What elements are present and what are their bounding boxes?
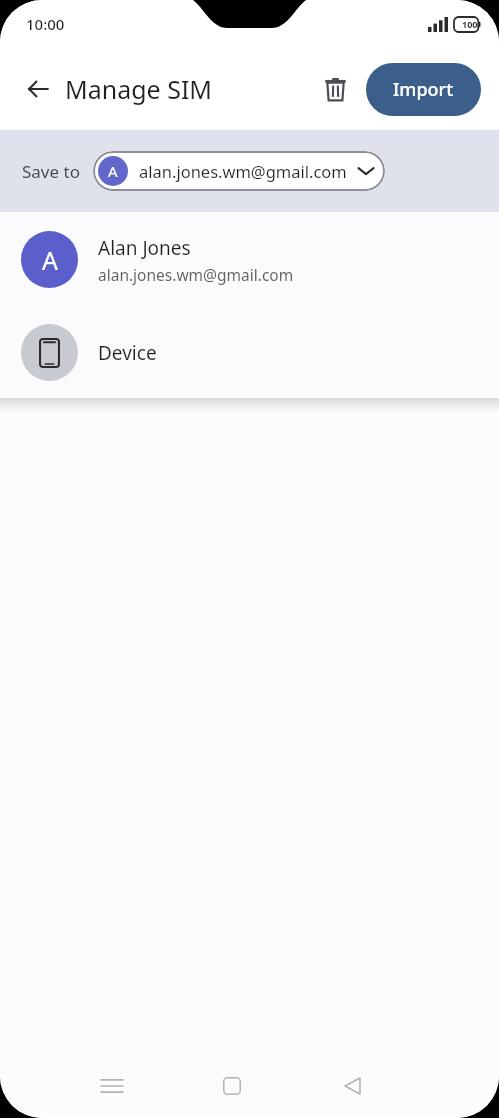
staticText: Device	[98, 340, 157, 366]
staticText: Manage SIM	[65, 72, 213, 106]
button[interactable]: Back	[14, 65, 62, 113]
button[interactable]: Device	[0, 307, 499, 398]
staticText: alan.jones.wm@gmail.com	[139, 160, 347, 182]
staticText: A	[42, 243, 58, 277]
staticText: 10:00	[26, 14, 65, 34]
button[interactable]: A	[0, 212, 499, 307]
staticText: A	[108, 161, 118, 181]
button[interactable]: Home	[206, 1060, 258, 1112]
button[interactable]: Recent apps	[86, 1060, 138, 1112]
staticText: alan.jones.wm@gmail.com	[98, 264, 294, 285]
staticText: Alan Jones	[98, 235, 191, 261]
button[interactable]: Import	[366, 63, 481, 116]
staticText: Save to	[22, 160, 80, 183]
button[interactable]: Delete	[312, 66, 358, 112]
staticText: 100	[462, 18, 478, 30]
button[interactable]: Back	[326, 1060, 378, 1112]
button[interactable]: A	[93, 151, 385, 191]
staticText: Import	[393, 77, 454, 102]
